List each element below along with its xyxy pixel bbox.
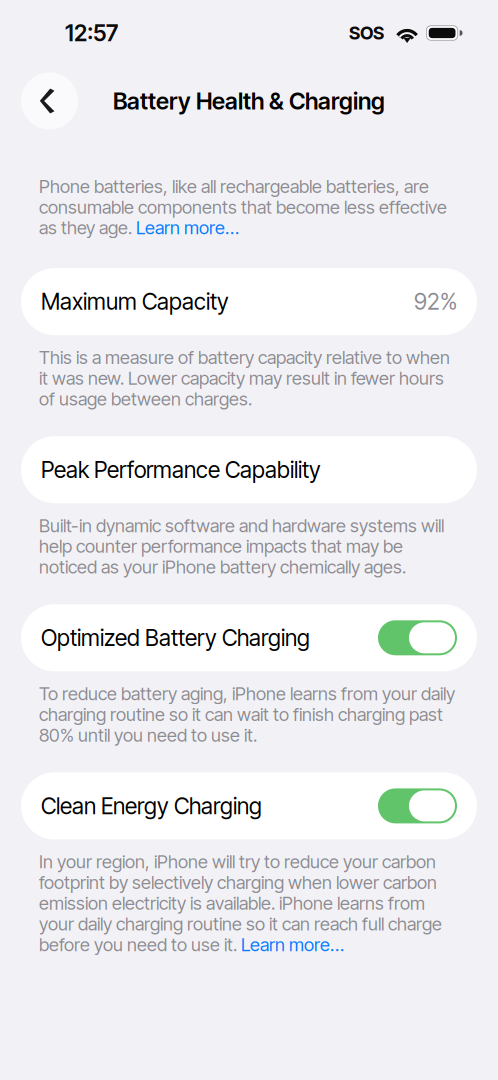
staticText: Optimized Battery Charging [41,624,310,651]
staticText: 92% [414,288,457,315]
staticText: Phone batteries, like all rechargeable b… [39,176,447,238]
button[interactable]: Optimized Battery Charging [378,620,457,655]
button[interactable]: Back [21,72,78,129]
staticText: In your region, iPhone will try to reduc… [39,851,442,955]
button[interactable]: Clean Energy Charging [378,788,457,823]
staticText: To reduce battery aging, iPhone learns f… [39,683,455,745]
staticText: Clean Energy Charging [41,792,262,820]
button[interactable]: Peak Performance Capability [0,436,498,503]
staticText: Built-in dynamic software and hardware s… [39,515,444,577]
staticText: This is a measure of battery capacity re… [39,347,450,409]
staticText: SOS [349,22,384,44]
staticText: Peak Performance Capability [41,456,321,483]
staticText: Battery Health & Charging [113,87,385,115]
staticText: Maximum Capacity [41,288,229,315]
staticText: 12:57 [65,19,118,47]
